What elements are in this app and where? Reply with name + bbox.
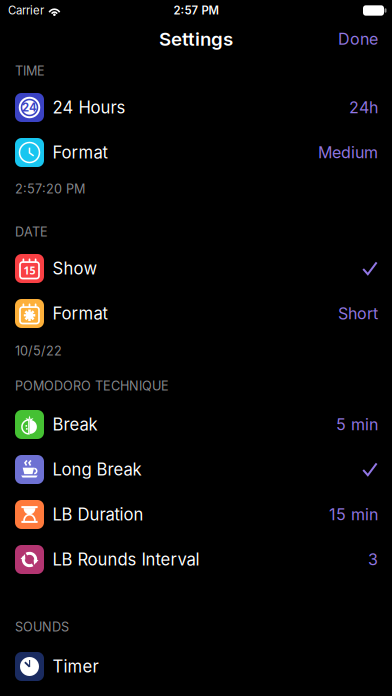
- button[interactable]: Format: [0, 291, 392, 336]
- staticText: Timer: [52, 656, 98, 677]
- staticText: 15 min: [329, 505, 378, 524]
- staticText: Done: [338, 29, 378, 49]
- staticText: SOUNDS: [15, 619, 69, 635]
- staticText: Show: [52, 258, 97, 279]
- staticText: 24 Hours: [52, 97, 125, 118]
- staticText: LB Duration: [52, 504, 143, 525]
- button[interactable]: Format: [0, 130, 392, 175]
- button[interactable]: 15: [0, 246, 392, 291]
- staticText: 2:57 PM: [173, 4, 218, 17]
- staticText: 2:57:20 PM: [15, 181, 85, 197]
- button[interactable]: Timer: [0, 644, 392, 689]
- staticText: POMODORO TECHNIQUE: [15, 378, 169, 394]
- staticText: Settings: [159, 28, 233, 50]
- button[interactable]: LB Duration: [0, 492, 392, 537]
- staticText: 24h: [349, 98, 378, 117]
- staticText: DATE: [15, 224, 48, 240]
- staticText: 10/5/22: [15, 343, 62, 359]
- button[interactable]: 24: [0, 85, 392, 130]
- staticText: Medium: [318, 143, 378, 162]
- button[interactable]: Long Break: [0, 447, 392, 492]
- staticText: 24: [22, 101, 37, 114]
- staticText: Short: [338, 304, 378, 323]
- staticText: Format: [52, 303, 107, 324]
- button[interactable]: Break: [0, 402, 392, 447]
- staticText: 15: [23, 263, 35, 277]
- staticText: Carrier: [8, 4, 44, 17]
- staticText: Long Break: [52, 459, 141, 480]
- button[interactable]: Done: [324, 22, 392, 56]
- staticText: 3: [368, 550, 378, 569]
- staticText: 5 min: [336, 415, 378, 434]
- staticText: TIME: [15, 63, 45, 79]
- button[interactable]: LB Rounds Interval: [0, 537, 392, 582]
- staticText: LB Rounds Interval: [52, 549, 199, 570]
- staticText: Break: [52, 414, 97, 435]
- staticText: Format: [52, 142, 107, 163]
